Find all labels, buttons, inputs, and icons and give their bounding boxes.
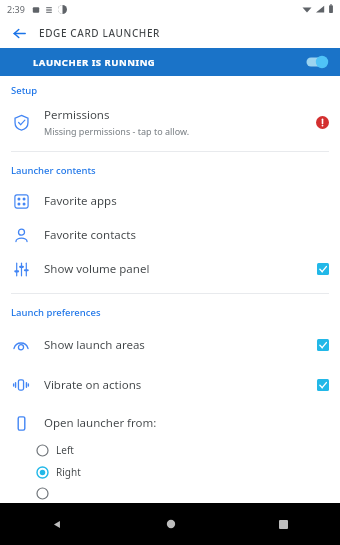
button[interactable]: Favorite apps	[0, 191, 340, 211]
button[interactable]: Vibrate on actions	[0, 375, 340, 395]
staticText: Vibrate on actions	[44, 377, 142, 393]
button[interactable]: Show launch areas	[0, 335, 340, 355]
staticText: Left	[56, 443, 74, 457]
staticText: Launcher contents	[11, 164, 96, 177]
staticText: Setup	[11, 84, 38, 97]
button[interactable]: Show volume panel	[0, 259, 340, 279]
staticText: Missing permissions - tap to allow.	[44, 125, 190, 137]
button[interactable]: Left	[0, 443, 340, 457]
button[interactable]: Recent apps	[227, 503, 340, 545]
button[interactable]: Back	[0, 503, 114, 545]
staticText: Open launcher from:	[44, 415, 157, 431]
staticText: 2:39	[7, 3, 25, 15]
button[interactable]: Right	[0, 465, 340, 479]
staticText: Show volume panel	[44, 261, 150, 277]
button[interactable]: LAUNCHER IS RUNNING	[0, 48, 340, 76]
button[interactable]	[0, 487, 340, 500]
button[interactable]: Home	[114, 503, 227, 545]
staticText: EDGE CARD LAUNCHER	[39, 26, 160, 40]
button[interactable]: Toggle launcher	[302, 52, 332, 72]
staticText: Favorite contacts	[44, 227, 136, 243]
button[interactable]: Back	[6, 20, 32, 46]
button[interactable]: Permissions	[0, 107, 340, 137]
staticText: Show launch areas	[44, 337, 145, 353]
staticText: Right	[56, 465, 81, 479]
staticText: Permissions	[44, 107, 110, 123]
staticText: Favorite apps	[44, 193, 117, 209]
staticText: Launch preferences	[11, 306, 101, 319]
button[interactable]: Favorite contacts	[0, 225, 340, 245]
staticText: LAUNCHER IS RUNNING	[33, 56, 156, 69]
